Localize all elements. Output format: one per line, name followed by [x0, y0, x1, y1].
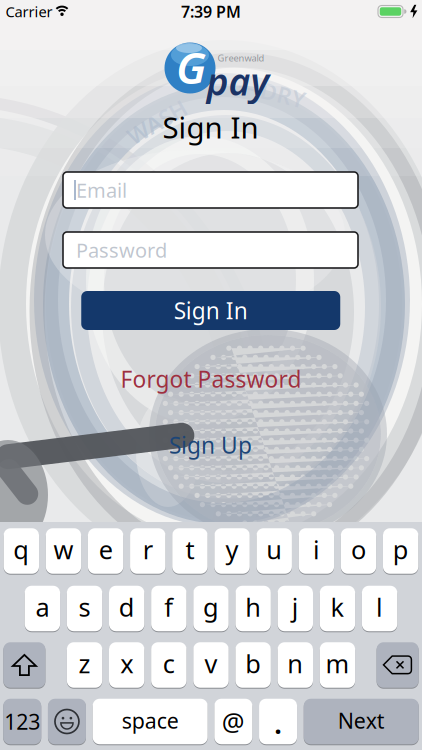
- button[interactable]: Shift: [3, 642, 45, 688]
- button[interactable]: m: [320, 642, 355, 688]
- button[interactable]: Sign Up: [169, 430, 252, 460]
- staticText: Forgot Password: [120, 364, 301, 394]
- staticText: @: [222, 705, 245, 738]
- staticText: w: [53, 533, 73, 566]
- staticText: f: [164, 590, 173, 624]
- staticText: u: [266, 533, 282, 566]
- staticText: i: [313, 533, 320, 566]
- staticText: j: [292, 590, 299, 624]
- staticText: —DRY: [237, 77, 306, 107]
- button[interactable]: u: [256, 528, 292, 574]
- button[interactable]: Next: [304, 698, 419, 745]
- button[interactable]: Forgot Password: [120, 364, 301, 394]
- staticText: Email: [76, 177, 127, 203]
- button[interactable]: q: [4, 528, 39, 574]
- staticText: t: [185, 533, 194, 566]
- staticText: x: [120, 647, 133, 680]
- button[interactable]: i: [299, 528, 334, 574]
- staticText: Sign In: [174, 295, 248, 325]
- button[interactable]: y: [214, 528, 250, 574]
- button[interactable]: h: [235, 585, 271, 632]
- button[interactable]: t: [172, 528, 208, 574]
- button[interactable]: r: [130, 528, 165, 574]
- button[interactable]: @: [214, 698, 252, 745]
- button[interactable]: e: [88, 528, 123, 574]
- staticText: WASH: [124, 107, 189, 137]
- button[interactable]: b: [235, 642, 271, 688]
- staticText: Sign In: [162, 107, 258, 146]
- button[interactable]: l: [362, 585, 397, 632]
- button[interactable]: v: [193, 642, 229, 688]
- button[interactable]: k: [320, 585, 355, 632]
- button[interactable]: Email: [63, 172, 358, 208]
- button[interactable]: space: [93, 698, 208, 745]
- button[interactable]: p: [383, 528, 418, 574]
- button[interactable]: x: [109, 642, 144, 688]
- staticText: c: [163, 647, 175, 680]
- button[interactable]: g: [193, 585, 229, 632]
- staticText: l: [376, 590, 383, 624]
- staticText: n: [287, 647, 303, 680]
- button[interactable]: Sign In: [81, 291, 340, 330]
- staticText: z: [78, 647, 90, 680]
- staticText: Sign Up: [169, 430, 252, 460]
- staticText: 123: [4, 707, 40, 736]
- staticText: e: [99, 533, 113, 566]
- staticText: y: [226, 533, 239, 566]
- button[interactable]: n: [278, 642, 313, 688]
- button[interactable]: Password: [63, 232, 358, 268]
- button[interactable]: Delete: [377, 642, 419, 688]
- staticText: 7:39 PM: [181, 1, 241, 22]
- staticText: s: [79, 590, 91, 624]
- staticText: space: [122, 706, 179, 735]
- button[interactable]: a: [25, 585, 60, 632]
- staticText: b: [245, 647, 261, 680]
- staticText: k: [330, 590, 344, 624]
- staticText: a: [35, 590, 49, 624]
- button[interactable]: s: [67, 585, 102, 632]
- staticText: d: [119, 590, 135, 624]
- staticText: Next: [338, 706, 385, 735]
- staticText: G: [176, 38, 206, 96]
- staticText: g: [203, 590, 219, 624]
- staticText: o: [351, 533, 366, 566]
- button[interactable]: f: [151, 585, 187, 632]
- staticText: h: [245, 590, 261, 624]
- staticText: Greenwald: [217, 52, 264, 64]
- staticText: .: [274, 703, 282, 742]
- button[interactable]: Numbers: [3, 698, 41, 745]
- staticText: r: [143, 533, 153, 566]
- button[interactable]: j: [278, 585, 313, 632]
- staticText: v: [204, 647, 217, 680]
- button[interactable]: w: [46, 528, 81, 574]
- staticText: p: [393, 533, 409, 566]
- button[interactable]: Emoji: [48, 698, 86, 745]
- staticText: m: [325, 647, 349, 680]
- button[interactable]: d: [109, 585, 144, 632]
- button[interactable]: c: [151, 642, 186, 688]
- staticText: Carrier: [5, 2, 52, 21]
- staticText: pay: [206, 56, 269, 106]
- button[interactable]: z: [67, 642, 102, 688]
- staticText: Password: [76, 237, 167, 263]
- button[interactable]: o: [341, 528, 376, 574]
- button[interactable]: .: [259, 698, 297, 745]
- staticText: q: [13, 533, 29, 566]
